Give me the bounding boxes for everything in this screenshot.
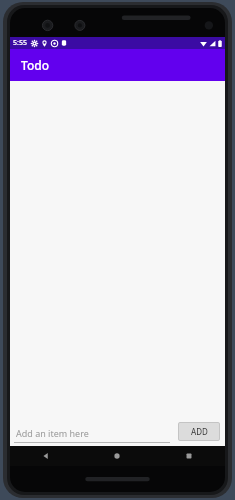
staticText: Todo	[21, 57, 50, 73]
button[interactable]: Back	[10, 446, 81, 466]
staticText: ADD	[191, 426, 208, 437]
staticText: Add an item here	[16, 427, 89, 439]
button[interactable]: ADD	[178, 422, 220, 441]
button[interactable]: Recent apps	[153, 446, 225, 466]
button[interactable]: Add an item here	[14, 416, 174, 446]
staticText: 5:55	[13, 38, 27, 48]
button[interactable]: Home	[81, 446, 153, 466]
